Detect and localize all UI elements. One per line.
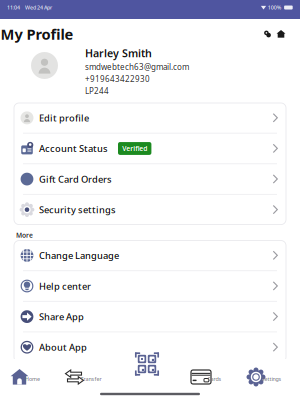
staticText: Security settings [39,203,116,216]
staticText: Change Language [39,249,119,262]
button[interactable]: Support [263,29,272,38]
staticText: Settings [261,375,281,383]
staticText: smdwebtech63@gmail.com [85,62,189,72]
staticText: Share App [39,310,84,323]
button[interactable]: Account Status [14,134,286,163]
button[interactable]: Settings [246,363,285,391]
staticText: About App [39,341,87,353]
staticText: Verified [122,144,147,153]
button[interactable]: Home [10,363,44,391]
button[interactable]: Help center [14,271,286,301]
staticText: More [16,231,33,240]
staticText: Transfer [80,375,101,383]
button[interactable]: About App [14,332,286,362]
staticText: Gift Card Orders [39,173,112,185]
staticText: Account Status [39,142,108,155]
button[interactable]: Edit profile [14,103,286,133]
button[interactable]: Scan QR code [130,348,164,380]
staticText: Edit profile [39,112,89,124]
button[interactable]: Transfer [64,363,105,391]
button[interactable]: Gift Card Orders [14,164,286,194]
staticText: Harley Smith [85,46,152,60]
button[interactable]: Share App [14,302,286,332]
staticText: Home [25,375,40,383]
staticText: +919643422930 [85,74,150,84]
staticText: Help center [39,280,91,292]
staticText: My Profile [0,24,73,44]
staticText: Cards [207,375,221,383]
button[interactable]: Cards [190,363,225,391]
staticText: Wed 24 Apr [25,4,52,11]
staticText: 100% [268,4,282,11]
staticText: LP244 [85,86,109,96]
button[interactable]: Security settings [14,195,286,225]
button[interactable]: Home [276,29,285,38]
button[interactable]: Change Language [14,241,286,270]
staticText: 11:04 [7,4,20,11]
